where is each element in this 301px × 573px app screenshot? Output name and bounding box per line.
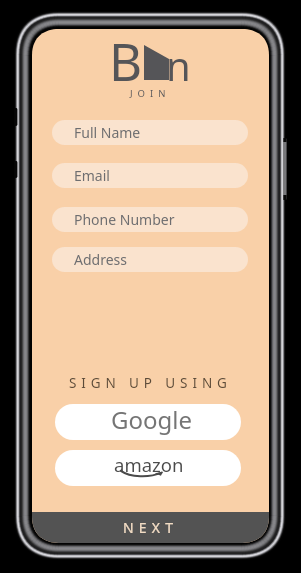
staticText: n <box>166 38 191 92</box>
staticText: amazon <box>114 452 182 474</box>
staticText: JOIN <box>130 87 171 100</box>
button[interactable]: NEXT <box>32 512 269 543</box>
staticText: B <box>109 29 143 95</box>
staticText: NEXT <box>123 518 179 537</box>
button[interactable]: Phone Number <box>52 207 248 232</box>
staticText: Phone Number <box>74 210 175 229</box>
staticText: Google <box>111 404 192 436</box>
staticText: SIGN UP USING <box>69 374 232 392</box>
button[interactable]: Email <box>52 163 248 188</box>
button[interactable]: amazon <box>55 450 241 486</box>
staticText: Address <box>74 250 127 269</box>
button[interactable]: Google <box>55 404 241 440</box>
staticText: Full Name <box>74 123 141 142</box>
button[interactable]: Address <box>52 247 248 272</box>
button[interactable]: Full Name <box>52 120 248 145</box>
staticText: Email <box>74 166 110 185</box>
